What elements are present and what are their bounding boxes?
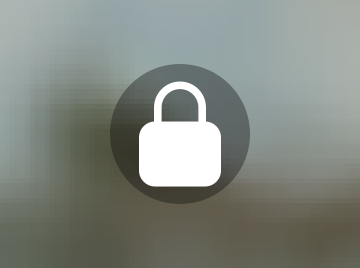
button[interactable]: Locked content [110,64,250,204]
